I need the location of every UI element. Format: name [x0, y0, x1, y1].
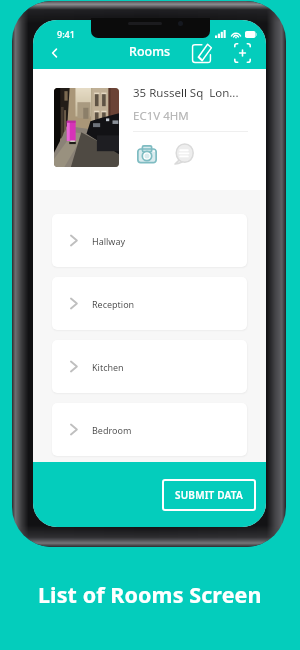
- staticText: Hallway: [92, 235, 126, 247]
- button[interactable]: Notes: [173, 143, 195, 165]
- staticText: 9:41: [57, 28, 75, 40]
- staticText: Kitchen: [92, 361, 124, 373]
- staticText: List of Rooms Screen: [38, 580, 262, 609]
- button[interactable]: Reception: [52, 277, 247, 330]
- button[interactable]: Property photo: [54, 88, 119, 167]
- button[interactable]: Bedroom: [52, 403, 247, 456]
- button[interactable]: Hallway: [52, 214, 247, 267]
- button[interactable]: SUBMIT DATA: [162, 479, 256, 511]
- button[interactable]: Back: [42, 40, 68, 66]
- button[interactable]: Scan: [229, 40, 255, 66]
- staticText: Bedroom: [92, 424, 132, 436]
- button[interactable]: Take photo: [136, 143, 158, 165]
- staticText: SUBMIT DATA: [175, 488, 243, 502]
- staticText: 35 Russell Sq Lon...: [133, 85, 239, 101]
- button[interactable]: Edit: [188, 40, 214, 66]
- staticText: Rooms: [129, 43, 171, 60]
- staticText: EC1V 4HM: [133, 108, 189, 124]
- button[interactable]: Kitchen: [52, 340, 247, 393]
- staticText: Reception: [92, 298, 135, 310]
